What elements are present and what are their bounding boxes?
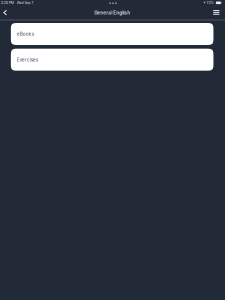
- button[interactable]: Exercises: [11, 49, 213, 71]
- staticText: General English: [94, 10, 130, 15]
- staticText: Exercises: [17, 57, 38, 62]
- button[interactable]: Menu: [211, 8, 221, 17]
- staticText: eBooks: [17, 31, 34, 37]
- staticText: Wed Sep 7: [16, 1, 33, 5]
- staticText: 73%: [206, 1, 213, 5]
- button[interactable]: eBooks: [11, 23, 213, 45]
- button[interactable]: Back: [1, 8, 10, 17]
- staticText: 3:20 PM: [1, 1, 14, 5]
